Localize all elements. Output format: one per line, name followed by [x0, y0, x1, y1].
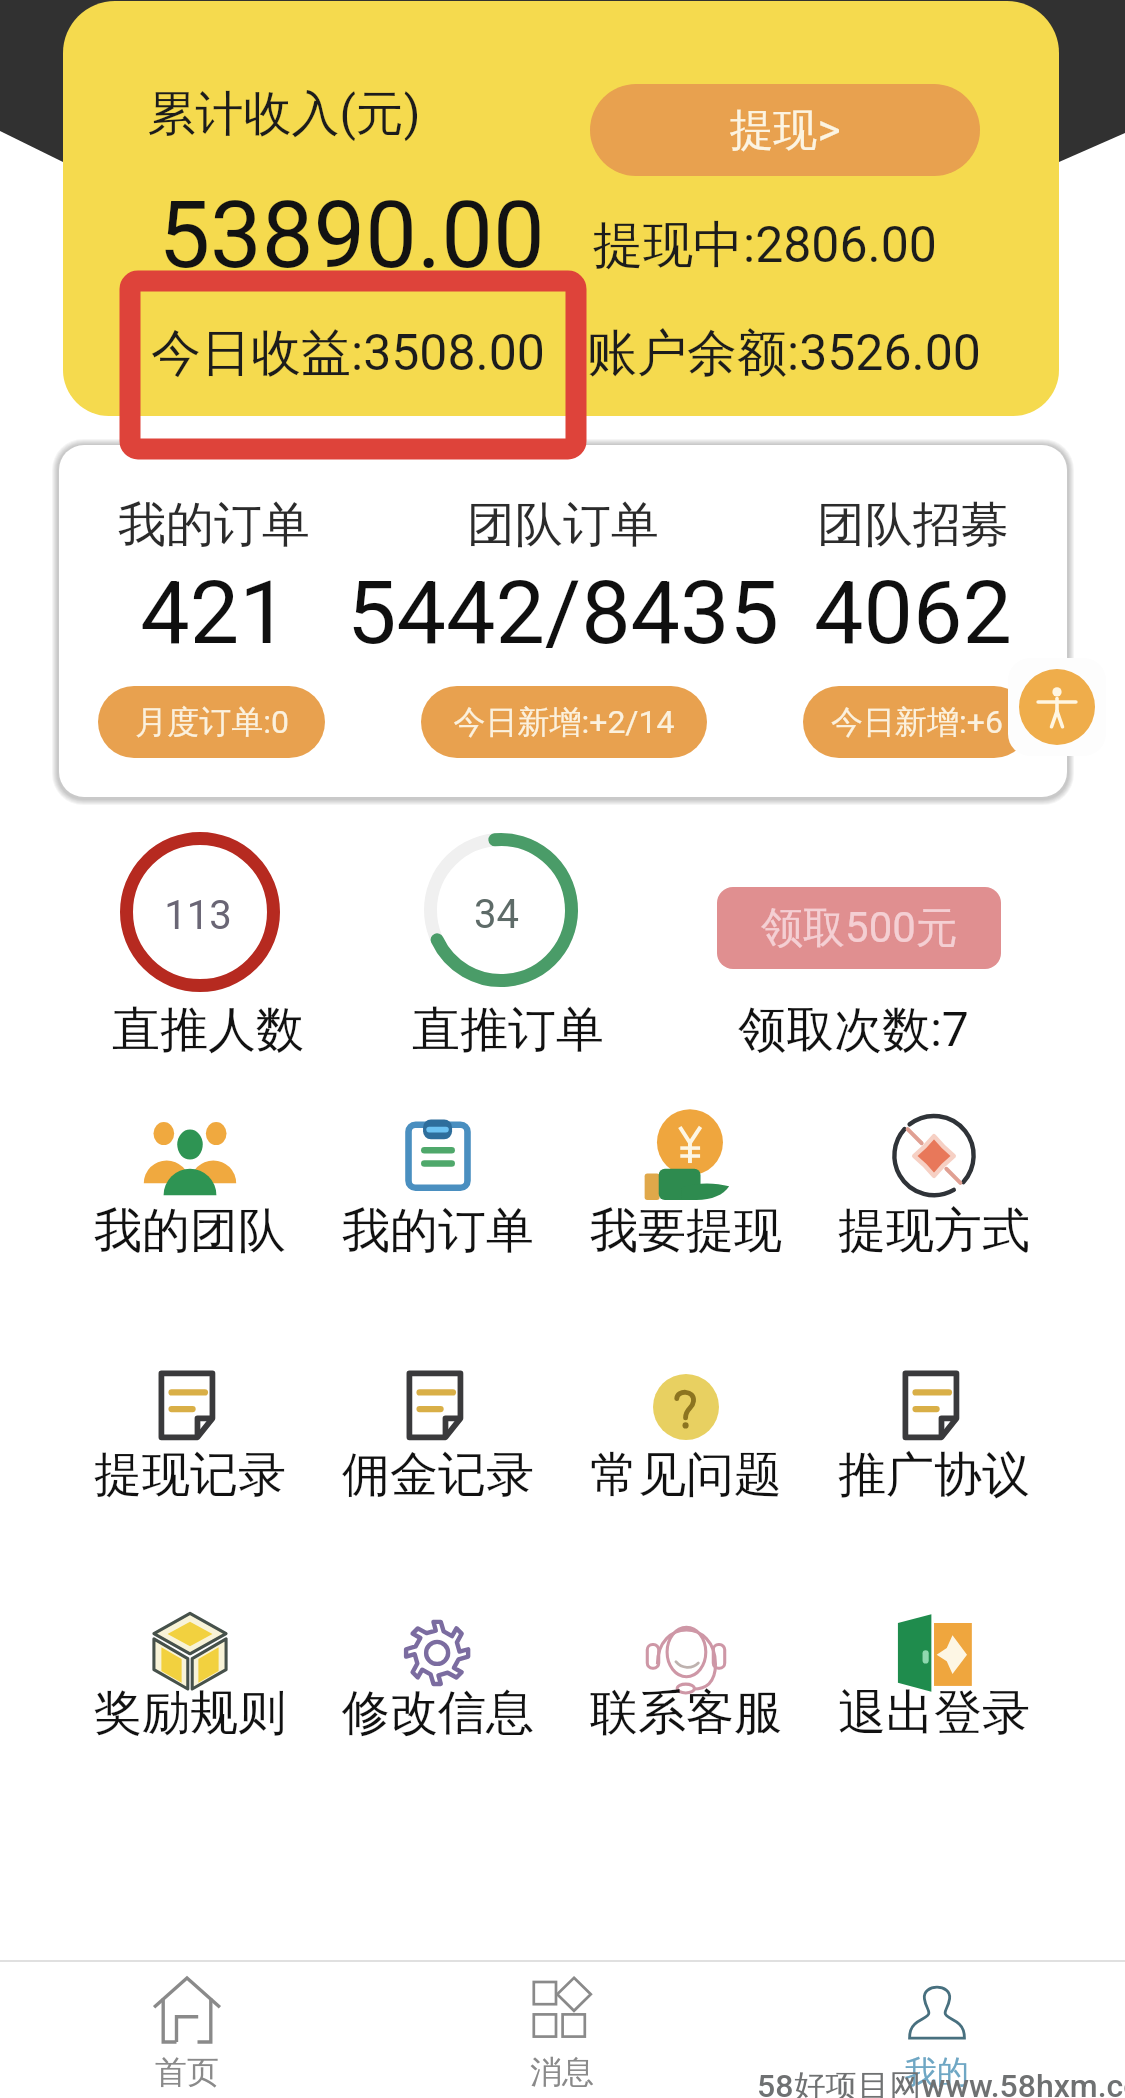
staticText: 提现>: [729, 103, 841, 158]
button[interactable]: 今日新增:+6: [803, 686, 1030, 758]
button[interactable]: [810, 1094, 1058, 1294]
staticText: 团队订单: [467, 495, 659, 555]
button[interactable]: [562, 1094, 810, 1294]
staticText: 我的团队: [94, 1201, 286, 1261]
staticText: 58好项目网www.58hxm.com: [757, 2066, 1125, 2098]
button[interactable]: 今日新增:+2/14: [421, 686, 707, 758]
button[interactable]: 提现>: [590, 84, 980, 176]
staticText: 联系客服: [590, 1683, 782, 1743]
staticText: 账户余额:3526.00: [587, 322, 981, 385]
staticText: 首页: [155, 2052, 219, 2092]
staticText: 提现记录: [94, 1445, 286, 1505]
button[interactable]: [66, 1348, 314, 1548]
staticText: 421: [140, 561, 289, 664]
staticText: 我的: [905, 2052, 969, 2092]
button[interactable]: [422, 1965, 702, 2095]
staticText: 退出登录: [838, 1683, 1030, 1743]
staticText: 提现方式: [838, 1201, 1030, 1261]
staticText: 累计收入(元): [147, 84, 421, 144]
staticText: 推广协议: [838, 1445, 1030, 1505]
button[interactable]: 领取500元: [717, 887, 1001, 969]
button[interactable]: [562, 1583, 810, 1783]
staticText: 4062: [814, 561, 1012, 664]
button[interactable]: [314, 1348, 562, 1548]
staticText: 修改信息: [342, 1683, 534, 1743]
button[interactable]: [66, 1094, 314, 1294]
button[interactable]: [810, 1348, 1058, 1548]
button[interactable]: [562, 1348, 810, 1548]
staticText: 53890.00: [158, 182, 545, 290]
staticText: 团队招募: [817, 495, 1009, 555]
button[interactable]: Accessibility: [1008, 658, 1106, 756]
staticText: 我要提现: [590, 1201, 782, 1261]
staticText: 领取500元: [761, 902, 958, 955]
staticText: 提现中:2806.00: [593, 214, 937, 277]
staticText: 34: [474, 891, 519, 938]
button[interactable]: [314, 1583, 562, 1783]
staticText: 月度订单:0: [135, 702, 289, 742]
staticText: 113: [164, 892, 232, 939]
staticText: 直推订单: [412, 1000, 604, 1060]
staticText: 今日新增:+2/14: [453, 702, 675, 742]
staticText: 我的订单: [342, 1201, 534, 1261]
button[interactable]: [47, 1962, 327, 2092]
staticText: 今日新增:+6: [831, 702, 1003, 742]
staticText: 今日收益:3508.00: [151, 322, 545, 385]
staticText: 我的订单: [118, 495, 310, 555]
staticText: 奖励规则: [94, 1683, 286, 1743]
button[interactable]: [66, 1583, 314, 1783]
staticText: 常见问题: [590, 1445, 782, 1505]
button[interactable]: [797, 1964, 1077, 2094]
button[interactable]: [810, 1583, 1058, 1783]
staticText: 5442/8435: [347, 561, 779, 664]
staticText: 消息: [530, 2052, 594, 2092]
button[interactable]: [314, 1094, 562, 1294]
staticText: 佣金记录: [342, 1445, 534, 1505]
button[interactable]: 月度订单:0: [98, 686, 325, 758]
staticText: 领取次数:7: [738, 1000, 969, 1060]
staticText: 直推人数: [112, 1000, 304, 1060]
